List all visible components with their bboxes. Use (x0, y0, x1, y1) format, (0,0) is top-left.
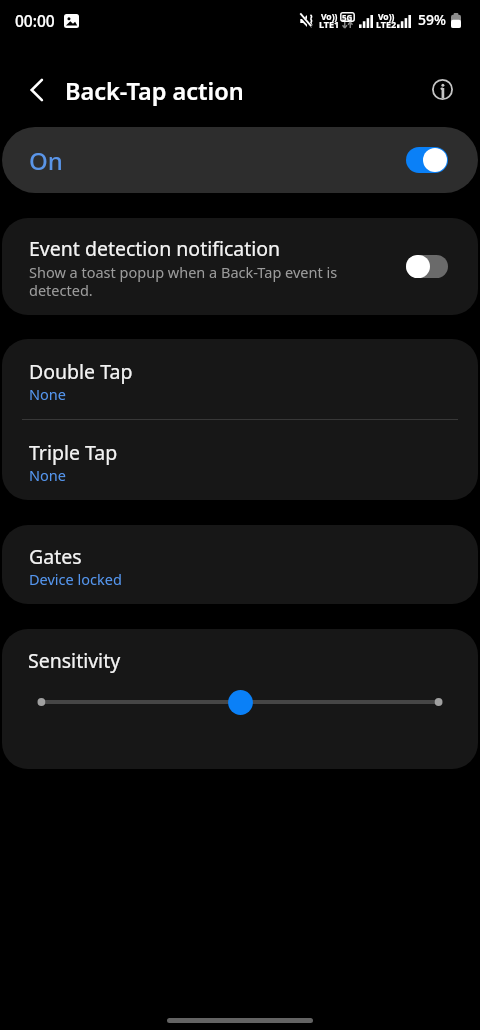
staticText: 59% (418, 10, 446, 29)
staticText: LTE1 (319, 18, 340, 30)
staticText: Gates (29, 543, 82, 570)
button[interactable]: Gates (2, 525, 478, 604)
button[interactable]: Event detection notification off (406, 255, 448, 278)
staticText: None (29, 384, 66, 404)
button[interactable]: Information (419, 66, 465, 112)
staticText: 5G (342, 12, 353, 22)
button[interactable]: Triple Tap (2, 420, 478, 500)
staticText: Triple Tap (29, 439, 118, 466)
staticText: Back-Tap action (65, 75, 244, 107)
button[interactable]: Sensitivity slider (2, 687, 478, 717)
staticText: None (29, 465, 66, 485)
staticText: Vo)) (378, 11, 395, 23)
button[interactable]: Back-Tap on (406, 147, 448, 173)
staticText: On (29, 144, 63, 177)
button[interactable]: Double Tap (2, 339, 478, 419)
staticText: Vo)) (321, 11, 338, 23)
staticText: Event detection notification (29, 235, 281, 262)
staticText: Show a toast popup when a Back-Tap event… (29, 262, 394, 300)
button[interactable]: Back (14, 69, 60, 111)
staticText: Sensitivity (28, 647, 121, 674)
staticText: LTE2 (376, 18, 397, 30)
staticText: 00:00 (15, 10, 55, 31)
staticText: Double Tap (29, 358, 133, 385)
staticText: Device locked (29, 569, 122, 589)
